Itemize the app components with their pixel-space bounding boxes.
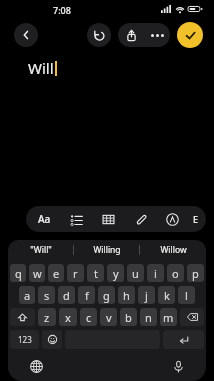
button[interactable]: y bbox=[107, 264, 124, 282]
button[interactable]: g bbox=[98, 286, 115, 304]
staticText: Will bbox=[28, 58, 54, 78]
button[interactable]: e bbox=[48, 264, 64, 282]
staticText: n bbox=[145, 310, 152, 325]
button[interactable]: r bbox=[67, 264, 84, 282]
staticText: t bbox=[94, 266, 98, 281]
button[interactable]: Shift bbox=[10, 308, 35, 326]
staticText: q bbox=[15, 266, 22, 281]
button[interactable]: h bbox=[118, 286, 135, 304]
staticText: m bbox=[163, 310, 174, 325]
button[interactable]: f bbox=[78, 286, 95, 304]
staticText: g bbox=[103, 288, 110, 303]
button[interactable]: q bbox=[10, 264, 26, 282]
button[interactable]: a bbox=[19, 286, 35, 304]
staticText: a bbox=[24, 288, 31, 303]
staticText: 123 bbox=[18, 334, 32, 345]
button[interactable]: Backspace bbox=[180, 308, 204, 326]
button[interactable]: Emoji bbox=[42, 330, 62, 349]
staticText: "Will" bbox=[30, 244, 52, 256]
staticText: k bbox=[164, 288, 170, 303]
button[interactable]: More options bbox=[144, 23, 170, 47]
button[interactable]: Share bbox=[118, 23, 144, 47]
staticText: s bbox=[44, 288, 50, 303]
staticText: f bbox=[85, 288, 89, 303]
button[interactable]: w bbox=[29, 264, 45, 282]
button[interactable]: t bbox=[87, 264, 104, 282]
staticText: j bbox=[145, 288, 148, 303]
staticText: r bbox=[73, 266, 78, 281]
button[interactable]: v bbox=[100, 308, 117, 326]
button[interactable]: Markup bbox=[156, 206, 188, 232]
staticText: h bbox=[123, 288, 130, 303]
staticText: d bbox=[63, 288, 70, 303]
button[interactable]: Willing bbox=[74, 240, 140, 260]
button[interactable]: p bbox=[187, 264, 204, 282]
staticText: e bbox=[53, 266, 60, 281]
staticText: v bbox=[106, 310, 112, 325]
staticText: w bbox=[33, 266, 42, 281]
staticText: Willow bbox=[160, 244, 187, 256]
staticText: Aa bbox=[38, 212, 51, 226]
staticText: o bbox=[172, 266, 179, 281]
button[interactable]: u bbox=[127, 264, 144, 282]
button[interactable]: Text style bbox=[28, 206, 60, 232]
button[interactable]: s bbox=[38, 286, 55, 304]
button[interactable]: 123 bbox=[10, 330, 39, 349]
button[interactable]: Return bbox=[163, 330, 204, 349]
button[interactable]: Change keyboard bbox=[26, 356, 46, 376]
button[interactable]: Checklist bbox=[60, 206, 92, 232]
staticText: 7:08 bbox=[53, 4, 71, 16]
button[interactable]: Back bbox=[14, 23, 38, 47]
button[interactable]: Voice input bbox=[168, 356, 188, 376]
button[interactable]: Willow bbox=[140, 240, 206, 260]
button[interactable]: c bbox=[80, 308, 97, 326]
staticText: z bbox=[44, 310, 50, 325]
button[interactable]: i bbox=[147, 264, 164, 282]
button[interactable]: "Will" bbox=[8, 240, 74, 260]
staticText: u bbox=[132, 266, 139, 281]
button[interactable]: m bbox=[160, 308, 177, 326]
staticText: c bbox=[86, 310, 92, 325]
button[interactable]: n bbox=[140, 308, 157, 326]
staticText: b bbox=[125, 310, 132, 325]
staticText: E bbox=[193, 213, 199, 225]
button[interactable]: Undo bbox=[87, 23, 111, 47]
button[interactable]: Table bbox=[92, 206, 124, 232]
button[interactable]: j bbox=[138, 286, 155, 304]
button[interactable]: b bbox=[120, 308, 137, 326]
button[interactable]: Done bbox=[177, 22, 203, 48]
button[interactable]: Attach bbox=[124, 206, 156, 232]
button[interactable]: x bbox=[59, 308, 77, 326]
button[interactable]: l bbox=[178, 286, 195, 304]
button[interactable]: d bbox=[58, 286, 75, 304]
staticText: x bbox=[65, 310, 71, 325]
staticText: p bbox=[192, 266, 199, 281]
staticText: i bbox=[154, 266, 157, 281]
staticText: Willing bbox=[93, 244, 121, 256]
button[interactable]: o bbox=[167, 264, 184, 282]
button[interactable]: z bbox=[38, 308, 56, 326]
staticText: l bbox=[185, 288, 188, 303]
button[interactable]: k bbox=[158, 286, 175, 304]
staticText: y bbox=[113, 266, 119, 281]
